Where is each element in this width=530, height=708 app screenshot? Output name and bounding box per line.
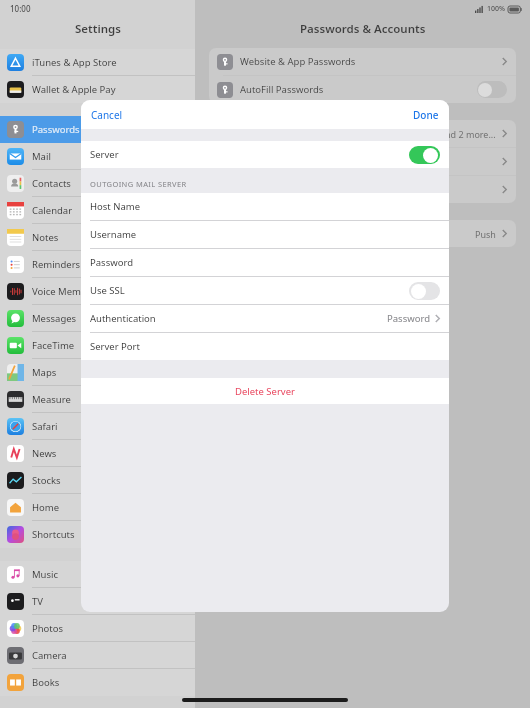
staticText: Settings	[75, 21, 121, 37]
staticText: Calendar	[32, 204, 73, 217]
staticText: OUTGOING MAIL SERVER	[90, 179, 187, 189]
staticText: Passwords & Accounts	[300, 21, 426, 37]
button[interactable]: Calendar	[0, 197, 195, 224]
button[interactable]: Shortcuts	[0, 521, 195, 548]
button[interactable]: Reminders	[0, 251, 195, 278]
button[interactable]: Done	[409, 105, 443, 125]
button[interactable]: TV	[0, 588, 195, 615]
button[interactable]: Use SSL disabled	[409, 282, 440, 300]
button[interactable]: Measure	[0, 386, 195, 413]
staticText: Notes	[32, 231, 59, 244]
staticText: Cancel	[91, 108, 123, 122]
staticText: Shortcuts	[32, 528, 75, 541]
staticText: iTunes & App Store	[32, 56, 117, 69]
button[interactable]: Fetch New Data	[217, 220, 507, 247]
button[interactable]: AutoFill Passwords	[217, 76, 507, 103]
button[interactable]: Books	[0, 669, 195, 696]
button[interactable]: Safari	[0, 413, 195, 440]
staticText: Books	[32, 676, 60, 689]
button[interactable]: Voice Memos	[0, 278, 195, 305]
staticText: Host Name	[90, 200, 141, 213]
button[interactable]: Password	[90, 249, 440, 276]
button[interactable]: Passwords & Accounts	[0, 116, 195, 143]
button[interactable]: Authentication	[90, 305, 440, 332]
button[interactable]: Maps	[0, 359, 195, 386]
staticText: Maps	[32, 366, 57, 379]
button[interactable]: Server enabled	[409, 146, 440, 164]
staticText: Music	[32, 568, 59, 581]
button[interactable]: Host Name	[90, 193, 440, 220]
button[interactable]: Notes	[0, 224, 195, 251]
staticText: Passwords & Accounts	[32, 123, 133, 136]
button[interactable]: FaceTime	[0, 332, 195, 359]
staticText: FaceTime	[32, 339, 75, 352]
button[interactable]: Cancel	[87, 105, 127, 125]
staticText: Wallet & Apple Pay	[32, 83, 116, 96]
staticText: Add Account	[217, 183, 274, 196]
staticText: Home	[32, 501, 60, 514]
staticText: Delete Server	[235, 385, 295, 398]
button[interactable]: Use SSL	[90, 277, 440, 304]
staticText: Measure	[32, 393, 71, 406]
staticText: and 2 more...	[440, 128, 496, 140]
staticText: Password	[387, 312, 430, 325]
button[interactable]: Music	[0, 561, 195, 588]
staticText: Username	[90, 228, 137, 241]
staticText: Server Port	[90, 340, 140, 353]
staticText: Website & App Passwords	[240, 55, 356, 68]
staticText: Safari	[32, 420, 58, 433]
button[interactable]: Wallet & Apple Pay	[0, 76, 195, 103]
button[interactable]: Camera	[0, 642, 195, 669]
staticText: News	[32, 447, 57, 460]
button[interactable]: Delete Server	[81, 378, 449, 404]
staticText: AutoFill Passwords	[240, 83, 324, 96]
button[interactable]: Home	[0, 494, 195, 521]
button[interactable]: News	[0, 440, 195, 467]
button[interactable]: Messages	[0, 305, 195, 332]
button[interactable]: Website & App Passwords	[217, 48, 507, 75]
staticText: Messages	[32, 312, 77, 325]
staticText: Stocks	[32, 474, 61, 487]
staticText: 10:00	[10, 3, 31, 14]
staticText: Photos	[32, 622, 64, 635]
staticText: Push	[475, 228, 496, 240]
staticText: Voice Memos	[32, 285, 92, 298]
staticText: Authentication	[90, 312, 156, 325]
staticText: iCloud	[217, 127, 246, 140]
button[interactable]: iTunes & App Store	[0, 49, 195, 76]
staticText: Reminders	[32, 258, 81, 271]
button[interactable]: Username	[90, 221, 440, 248]
staticText: Camera	[32, 649, 67, 662]
button[interactable]: Add Account	[217, 176, 507, 203]
staticText: Mail	[32, 150, 51, 163]
staticText: Contacts	[32, 177, 71, 190]
button[interactable]: Photos	[0, 615, 195, 642]
button[interactable]: iCloud	[217, 120, 507, 147]
button[interactable]: Stocks	[0, 467, 195, 494]
staticText: Server	[90, 148, 119, 161]
staticText: 100%	[487, 4, 505, 14]
staticText: Done	[413, 108, 439, 122]
staticText: Use SSL	[90, 284, 125, 297]
staticText: TV	[32, 595, 43, 608]
button[interactable]: Server	[90, 141, 440, 168]
button[interactable]: Gmail	[217, 148, 507, 175]
button[interactable]: Server Port	[90, 333, 440, 360]
button[interactable]: Contacts	[0, 170, 195, 197]
button[interactable]: Mail	[0, 143, 195, 170]
staticText: Password	[90, 256, 133, 269]
